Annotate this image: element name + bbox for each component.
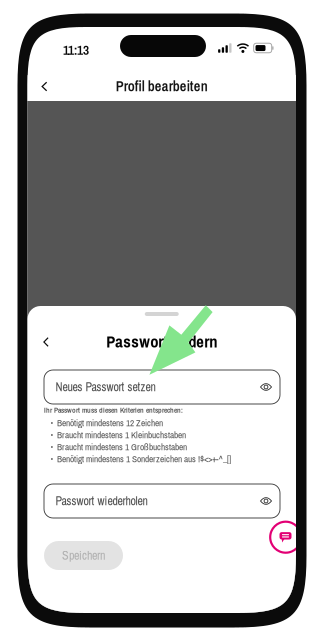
button[interactable]: Chat öffnen (270, 522, 301, 553)
staticText: Passwort ändern (106, 330, 217, 353)
staticText: 11:13 (63, 41, 89, 59)
staticText: Ihr Passwort muss diesen Kriterien entsp… (44, 405, 183, 415)
staticText: Braucht mindestens 1 Kleinbuchstaben (57, 429, 186, 441)
staticText: Braucht mindestens 1 Großbuchstaben (57, 441, 187, 453)
staticText: Passwort wiederholen (55, 493, 147, 509)
staticText: Benötigt mindestens 12 Zeichen (57, 417, 163, 429)
button[interactable]: Zurück (34, 331, 58, 353)
button[interactable]: Passwort anzeigen (255, 490, 277, 512)
staticText: Benötigt mindestens 1 Sonderzeichen aus … (57, 453, 231, 465)
staticText: Speichern (62, 547, 105, 564)
button[interactable]: Speichern (44, 541, 123, 570)
button[interactable]: Passwort anzeigen (255, 376, 277, 398)
staticText: Profil bearbeiten (116, 76, 208, 96)
button[interactable]: Zurück (31, 74, 57, 98)
staticText: Neues Passwort setzen (55, 379, 155, 395)
